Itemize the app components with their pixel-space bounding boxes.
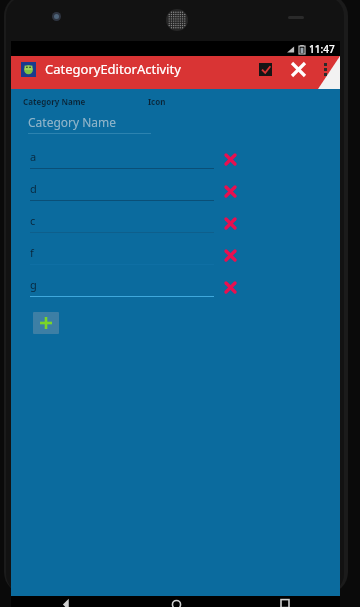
button[interactable]: More options: [316, 56, 334, 82]
staticText: f: [30, 245, 34, 260]
button[interactable]: a: [11, 143, 340, 175]
button[interactable]: Close: [286, 57, 310, 81]
button[interactable]: Delete c: [219, 212, 241, 234]
button[interactable]: Add category: [33, 312, 59, 334]
button[interactable]: Recent apps: [271, 596, 299, 607]
button[interactable]: Home: [162, 596, 190, 607]
staticText: g: [30, 277, 37, 292]
staticText: Icon: [148, 96, 166, 107]
staticText: CategoryEditorActivity: [45, 60, 181, 78]
button[interactable]: Category Name: [28, 114, 151, 134]
button[interactable]: f: [11, 239, 340, 271]
button[interactable]: d: [11, 175, 340, 207]
staticText: d: [30, 181, 37, 196]
staticText: Category Name: [28, 114, 117, 130]
staticText: c: [30, 213, 36, 228]
button[interactable]: Save category: [254, 58, 276, 80]
staticText: Category Name: [23, 96, 86, 107]
staticText: 11:47: [309, 42, 335, 56]
button[interactable]: Delete d: [219, 180, 241, 202]
staticText: a: [30, 149, 37, 164]
button[interactable]: c: [11, 207, 340, 239]
button[interactable]: Delete a: [219, 148, 241, 170]
button[interactable]: Delete f: [219, 244, 241, 266]
button[interactable]: g: [11, 271, 340, 303]
button[interactable]: Delete g: [219, 276, 241, 298]
button[interactable]: Back: [52, 596, 80, 607]
